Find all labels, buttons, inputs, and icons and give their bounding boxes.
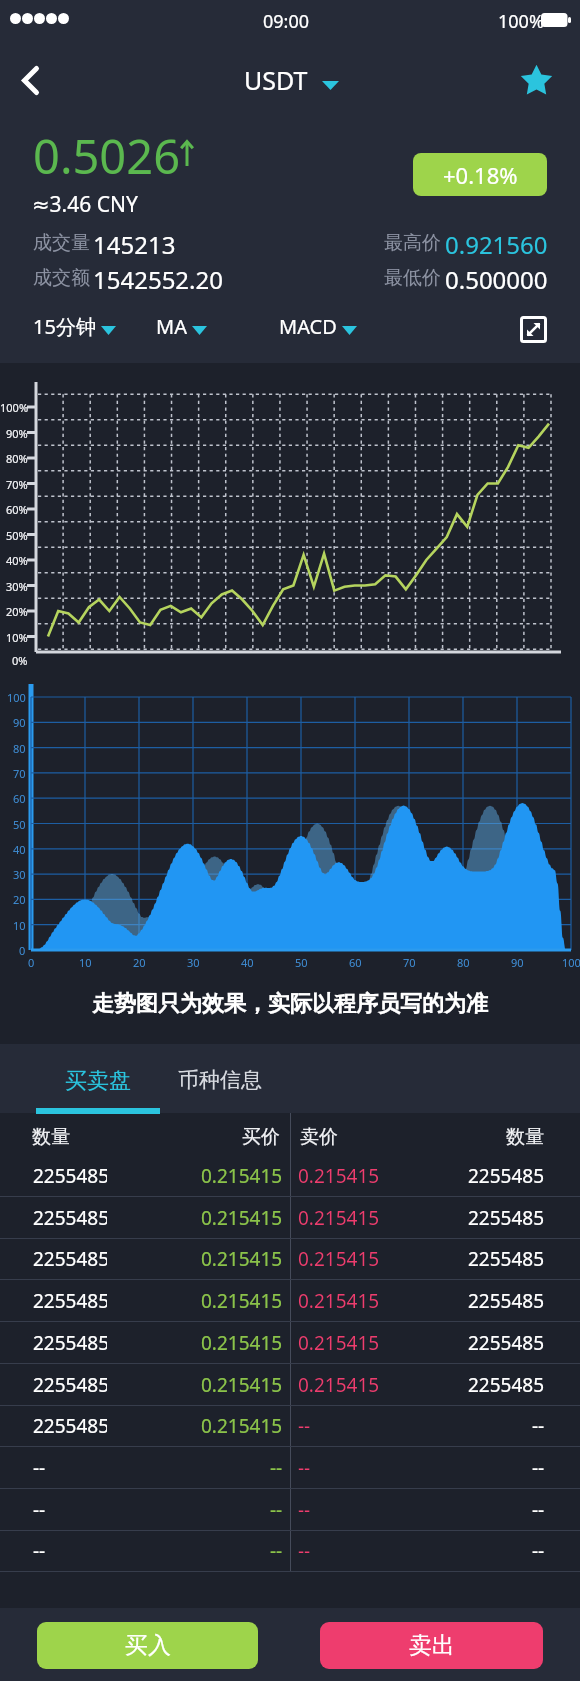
staticText: 成交额 <box>33 266 90 290</box>
staticText: -- <box>298 1497 311 1523</box>
staticText: -- <box>33 1455 46 1481</box>
staticText: 卖价 <box>300 1125 338 1149</box>
staticText: 50% <box>6 528 28 543</box>
staticText: 70% <box>6 477 28 492</box>
staticText: 100% <box>0 400 28 415</box>
staticText: MACD <box>279 313 337 340</box>
staticText: 145213 <box>93 228 176 261</box>
staticText: -- <box>270 1497 283 1523</box>
staticText: 2255485 <box>33 1163 107 1189</box>
staticText: 60% <box>6 502 28 517</box>
staticText: 2255485 <box>468 1205 545 1231</box>
button[interactable]: -- <box>0 1447 580 1489</box>
button[interactable]: -- <box>0 1530 580 1572</box>
button[interactable]: Back <box>4 54 56 106</box>
staticText: 0.500000 <box>445 263 548 296</box>
staticText: 30 <box>13 867 26 882</box>
button[interactable]: 2255485 <box>0 1155 580 1197</box>
staticText: 50 <box>295 955 308 970</box>
staticText: 走势图只为效果，实际以程序员写的为准 <box>92 990 488 1018</box>
staticText: 2255485 <box>33 1205 107 1231</box>
staticText: 70 <box>13 766 26 781</box>
staticText: 2255485 <box>33 1246 107 1272</box>
button[interactable]: 卖出 <box>320 1622 543 1669</box>
staticText: 0.215415 <box>298 1163 380 1189</box>
staticText: 0 <box>28 955 35 970</box>
button[interactable]: +0.18% <box>413 153 547 196</box>
staticText: 10 <box>13 918 26 933</box>
staticText: 1542552.20 <box>93 263 223 296</box>
button[interactable]: USDT <box>244 63 339 97</box>
staticText: 2255485 <box>468 1330 545 1356</box>
staticText: 2255485 <box>468 1246 545 1272</box>
staticText: 0.215415 <box>201 1205 283 1231</box>
staticText: 买价 <box>242 1125 280 1149</box>
button[interactable]: Favorite <box>510 53 562 105</box>
staticText: -- <box>298 1413 311 1439</box>
staticText: 0.215415 <box>298 1205 380 1231</box>
staticText: 20 <box>13 892 26 907</box>
staticText: 30% <box>6 579 28 594</box>
staticText: 0.215415 <box>201 1163 283 1189</box>
button[interactable]: MACD <box>279 313 357 340</box>
button[interactable]: 买入 <box>37 1622 258 1669</box>
staticText: 40 <box>13 842 26 857</box>
button[interactable]: 2255485 <box>0 1364 580 1406</box>
staticText: 10% <box>6 630 28 645</box>
staticText: 80% <box>6 451 28 466</box>
button[interactable]: 2255485 <box>0 1405 580 1447</box>
button[interactable]: 15分钟 <box>33 313 116 340</box>
staticText: 40% <box>6 553 28 568</box>
staticText: -- <box>532 1413 545 1439</box>
button[interactable]: 2255485 <box>0 1322 580 1364</box>
staticText: 10 <box>79 955 92 970</box>
button[interactable]: 2255485 <box>0 1197 580 1239</box>
staticText: 0.215415 <box>298 1246 380 1272</box>
button[interactable]: 币种信息 <box>178 1044 262 1113</box>
staticText: 90 <box>511 955 524 970</box>
staticText: 80 <box>457 955 470 970</box>
staticText: -- <box>33 1538 46 1564</box>
staticText: 90% <box>6 426 28 441</box>
staticText: 60 <box>349 955 362 970</box>
staticText: 买卖盘 <box>65 1067 131 1095</box>
staticText: -- <box>298 1538 311 1564</box>
button[interactable]: 2255485 <box>0 1238 580 1280</box>
staticText: 买入 <box>125 1631 171 1660</box>
button[interactable]: Fullscreen <box>514 310 552 348</box>
staticText: 0.215415 <box>201 1330 283 1356</box>
button[interactable]: MA <box>156 313 207 340</box>
staticText: 最低价 <box>384 266 441 290</box>
staticText: 0.215415 <box>298 1372 380 1398</box>
staticText: 最高价 <box>384 231 441 255</box>
staticText: 20 <box>133 955 146 970</box>
staticText: 09:00 <box>263 9 310 34</box>
staticText: 60 <box>13 791 26 806</box>
staticText: 40 <box>241 955 254 970</box>
staticText: 20% <box>6 604 28 619</box>
staticText: 0.215415 <box>201 1372 283 1398</box>
staticText: 0% <box>12 653 28 668</box>
staticText: -- <box>532 1455 545 1481</box>
staticText: 0.921560 <box>445 228 548 261</box>
staticText: 成交量 <box>33 231 90 255</box>
staticText: 数量 <box>506 1125 544 1149</box>
staticText: 2255485 <box>33 1413 107 1439</box>
staticText: 卖出 <box>409 1631 455 1660</box>
button[interactable]: 买卖盘 <box>36 1044 160 1113</box>
staticText: 0.215415 <box>298 1288 380 1314</box>
staticText: 0.215415 <box>298 1330 380 1356</box>
staticText: 70 <box>403 955 416 970</box>
staticText: 100% <box>498 9 544 34</box>
staticText: 2255485 <box>468 1372 545 1398</box>
staticText: 0.5026 <box>33 124 181 188</box>
staticText: 0.215415 <box>201 1413 283 1439</box>
staticText: 0.215415 <box>201 1246 283 1272</box>
staticText: 2255485 <box>33 1288 107 1314</box>
button[interactable]: -- <box>0 1489 580 1531</box>
staticText: 100 <box>7 690 26 705</box>
staticText: ≈3.46 CNY <box>32 190 138 219</box>
staticText: 0 <box>19 943 26 958</box>
staticText: 15分钟 <box>33 313 96 340</box>
button[interactable]: 2255485 <box>0 1280 580 1322</box>
